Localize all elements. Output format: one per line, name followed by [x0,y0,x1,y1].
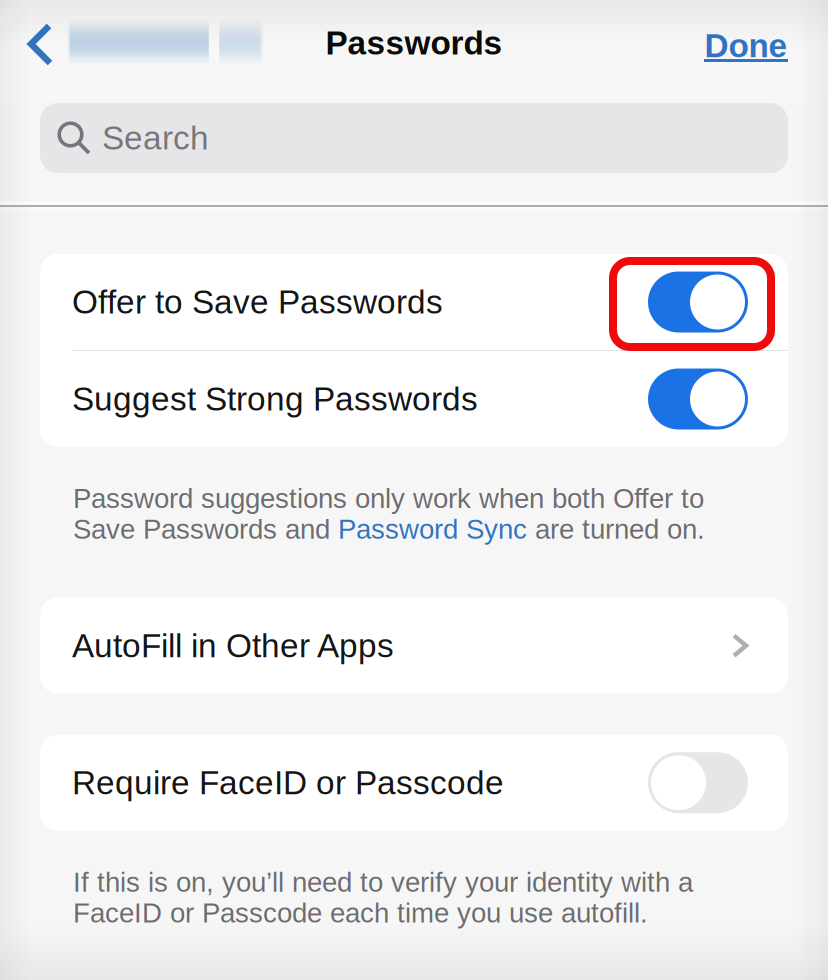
button[interactable]: Suggest Strong Passwords [40,351,788,447]
button[interactable]: AutoFill in Other Apps [40,598,788,694]
staticText: FaceID or Passcode each time you use aut… [73,897,648,928]
staticText: Password suggestions only work when both… [73,483,704,514]
button[interactable]: Done [704,0,828,86]
button[interactable]: Offer to Save Passwords [40,254,788,350]
button[interactable]: Back [0,0,264,86]
staticText: Offer to Save Passwords [72,283,443,321]
staticText: are turned on. [527,514,705,545]
staticText: If this is on, you’ll need to verify you… [73,867,693,897]
staticText: Passwords [325,24,502,62]
staticText: Suggest Strong Passwords [72,380,478,418]
staticText: Password Sync [338,514,527,545]
staticText: Save Passwords and [73,514,338,545]
staticText: Require FaceID or Passcode [72,764,504,801]
staticText: Done [704,27,787,64]
staticText: AutoFill in Other Apps [72,627,394,664]
button[interactable]: Require FaceID or Passcode [40,735,788,831]
staticText: Search [102,119,209,157]
